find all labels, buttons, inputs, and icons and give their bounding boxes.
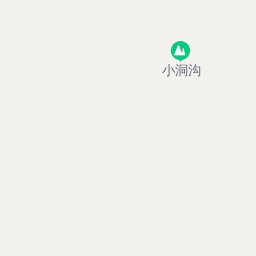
staticText: 小洞沟 bbox=[162, 62, 201, 79]
staticText: 小洞沟 bbox=[162, 62, 201, 78]
staticText: 小洞沟 bbox=[161, 62, 200, 78]
staticText: 小洞沟 bbox=[162, 61, 201, 78]
staticText: 小洞沟 bbox=[163, 62, 202, 78]
button[interactable]: 小洞沟 bbox=[161, 41, 200, 79]
